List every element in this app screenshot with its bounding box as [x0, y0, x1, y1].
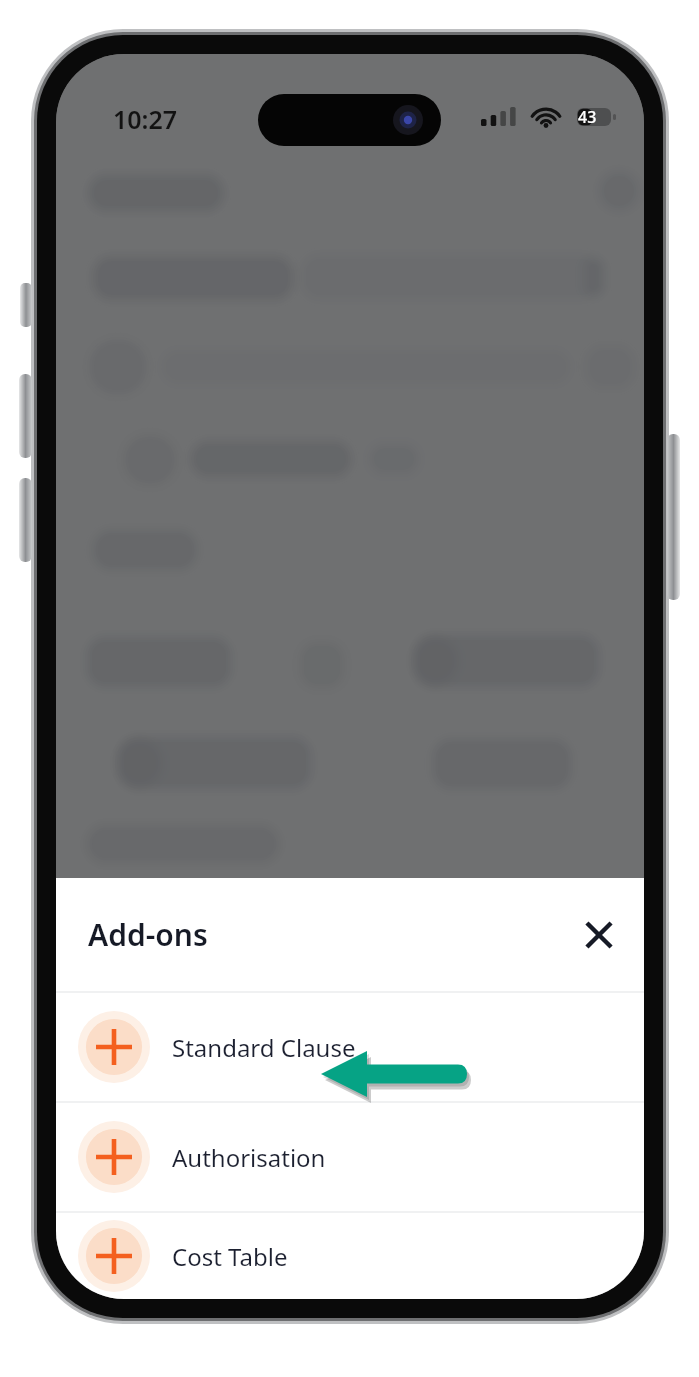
button[interactable]: Standard Clause: [56, 993, 644, 1101]
staticText: Cost Table: [172, 1240, 288, 1273]
staticText: 10:27: [113, 102, 178, 136]
staticText: 43: [578, 106, 597, 128]
button[interactable]: Cost Table: [56, 1213, 644, 1299]
staticText: Standard Clause: [172, 1031, 356, 1064]
button[interactable]: Close: [572, 908, 626, 962]
staticText: Authorisation: [172, 1141, 326, 1174]
staticText: Add-ons: [88, 914, 208, 955]
button[interactable]: Authorisation: [56, 1103, 644, 1211]
